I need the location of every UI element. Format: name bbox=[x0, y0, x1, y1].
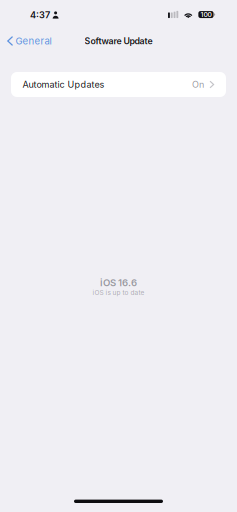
button[interactable]: General bbox=[0, 30, 52, 52]
staticText: iOS 16.6 bbox=[100, 277, 137, 289]
staticText: iOS is up to date bbox=[92, 289, 144, 296]
staticText: Software Update bbox=[84, 36, 152, 46]
staticText: 100 bbox=[200, 10, 211, 19]
staticText: 4:37 bbox=[30, 9, 50, 20]
staticText: Automatic Updates bbox=[23, 79, 105, 90]
staticText: On bbox=[192, 79, 204, 90]
button[interactable]: Automatic Updates bbox=[11, 72, 226, 97]
staticText: General bbox=[16, 35, 52, 47]
